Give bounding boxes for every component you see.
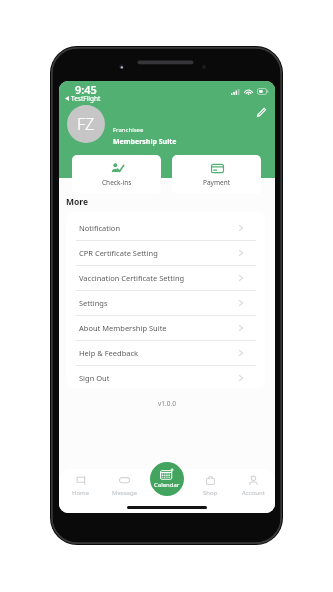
button[interactable]: Home [59,464,103,508]
staticText: Calendar [154,481,180,489]
staticText: Home [72,489,90,497]
staticText: Membership Suite [113,137,177,147]
staticText: TestFlight [71,94,101,103]
staticText: Shop [203,489,218,497]
button[interactable]: Edit profile [253,104,269,120]
button[interactable]: Help & Feedback [66,341,265,365]
button[interactable]: Account [232,464,275,508]
button[interactable]: Notification [66,216,265,240]
staticText: Vaccination Certificate Setting [79,273,185,283]
button[interactable]: Calendar [150,462,184,496]
button[interactable]: CPR Certificate Setting [66,241,265,265]
button[interactable]: Shop [189,464,232,508]
staticText: Help & Feedback [79,348,139,358]
staticText: v1.0.0 [59,399,275,408]
button[interactable]: Sign Out [66,366,265,388]
staticText: FZ [77,113,95,135]
staticText: 9:45 [75,82,97,97]
button[interactable]: Settings [66,291,265,315]
staticText: Payment [203,178,231,187]
button[interactable]: About Membership Suite [66,316,265,340]
staticText: More [66,196,89,208]
staticText: About Membership Suite [79,323,167,333]
staticText: Message [112,489,138,497]
staticText: Sign Out [79,373,110,383]
button[interactable]: Check-ins [72,155,161,194]
staticText: Check-ins [102,178,132,187]
staticText: CPR Certificate Setting [79,248,158,258]
button[interactable]: Vaccination Certificate Setting [66,266,265,290]
staticText: Settings [79,298,108,308]
staticText: Franchisee [113,126,144,134]
button[interactable]: Payment [172,155,261,194]
staticText: Account [242,489,265,497]
staticText: Notification [79,223,121,233]
button[interactable]: Message [103,464,146,508]
